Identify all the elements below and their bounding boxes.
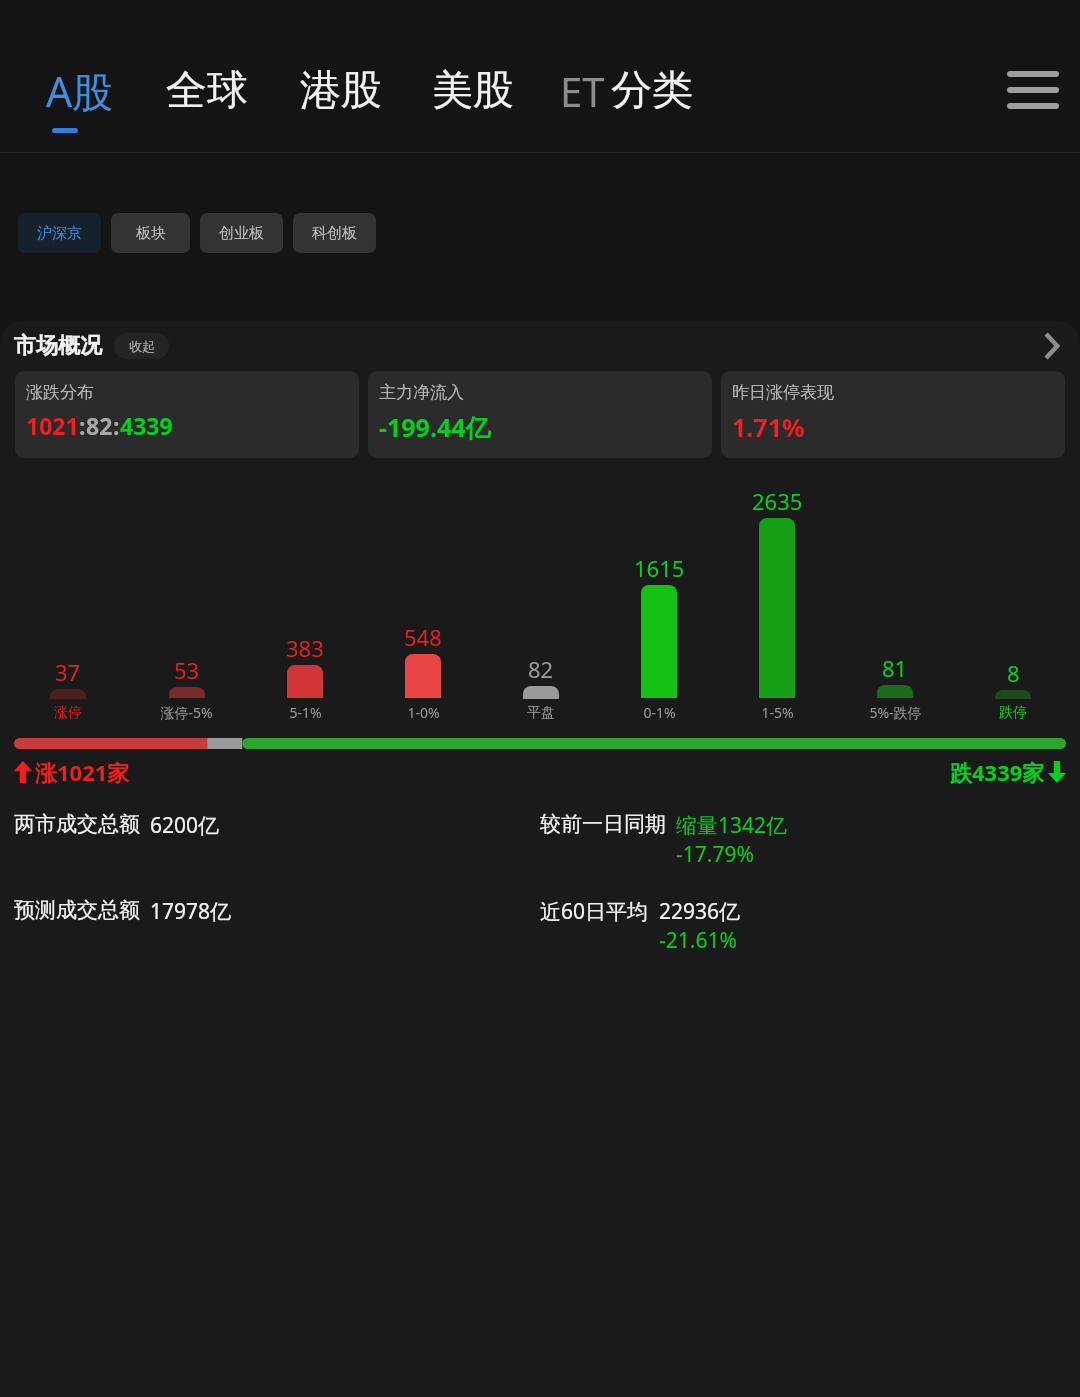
staticText: 跌停	[999, 704, 1027, 722]
staticText: 港股	[300, 65, 382, 117]
staticText: 22936亿	[659, 897, 741, 926]
button[interactable]: A股	[46, 63, 114, 119]
button[interactable]: 分类	[611, 65, 693, 117]
button[interactable]: 昨日涨停表现	[721, 371, 1065, 458]
staticText: 4339	[120, 410, 173, 441]
staticText: 17978亿	[150, 897, 232, 926]
staticText: A股	[46, 63, 114, 119]
button[interactable]: 沪深京	[18, 213, 101, 253]
staticText: -17.79%	[676, 840, 754, 869]
staticText: 全球	[166, 65, 248, 117]
staticText: 昨日涨停表现	[732, 382, 834, 403]
staticText: 主力净流入	[379, 382, 464, 403]
staticText: 5%-跌停	[869, 703, 922, 722]
staticText: 1-0%	[407, 703, 440, 722]
button[interactable]: 板块	[111, 213, 190, 253]
staticText: 6200亿	[150, 811, 220, 840]
staticText: ET	[560, 64, 605, 118]
button[interactable]: 美股	[432, 65, 514, 117]
button[interactable]: 收起	[114, 333, 169, 359]
staticText: 1-5%	[761, 703, 794, 722]
staticText: 548	[404, 622, 442, 652]
button[interactable]: 全球	[166, 65, 248, 117]
staticText: 预测成交总额	[14, 897, 140, 923]
staticText: 美股	[432, 65, 514, 117]
staticText: -21.61%	[659, 926, 737, 955]
staticText: 科创板	[312, 224, 357, 243]
button[interactable]: 主力净流入	[368, 371, 712, 458]
staticText: 8	[1007, 658, 1020, 688]
button[interactable]: 港股	[300, 65, 382, 117]
staticText: 82	[86, 410, 113, 441]
button[interactable]: 菜单	[998, 56, 1068, 126]
staticText: 板块	[136, 224, 166, 243]
staticText: 0-1%	[643, 703, 676, 722]
staticText: :	[113, 410, 120, 441]
staticText: 82	[528, 654, 554, 684]
staticText: 市场概况	[14, 332, 102, 360]
staticText: 分类	[611, 65, 693, 117]
staticText: 平盘	[527, 704, 555, 722]
staticText: -199.44亿	[379, 410, 491, 444]
staticText: 涨跌分布	[26, 382, 94, 403]
staticText: 1.71%	[732, 410, 805, 444]
staticText: 两市成交总额	[14, 811, 140, 837]
staticText: 1615	[634, 553, 685, 583]
button[interactable]: 涨跌分布	[15, 371, 359, 458]
staticText: 5-1%	[289, 703, 322, 722]
staticText: 涨停-5%	[160, 703, 213, 722]
staticText: 收起	[129, 338, 155, 354]
button[interactable]: 创业板	[200, 213, 283, 253]
staticText: 383	[286, 633, 324, 663]
staticText: 跌4339家	[950, 757, 1045, 787]
button[interactable]: 市场概况	[0, 321, 1080, 371]
staticText: 涨1021家	[35, 757, 130, 787]
staticText: 53	[174, 655, 200, 685]
staticText: 近60日平均	[540, 897, 649, 926]
staticText: 沪深京	[37, 224, 82, 243]
button[interactable]: 更多	[1036, 331, 1066, 361]
staticText: 37	[55, 657, 81, 687]
staticText: 较前一日同期	[540, 811, 666, 837]
staticText: :	[79, 410, 86, 441]
button[interactable]: 科创板	[293, 213, 376, 253]
staticText: 1021	[26, 410, 79, 441]
staticText: 涨停	[54, 704, 82, 722]
staticText: 创业板	[219, 224, 264, 243]
staticText: 2635	[752, 486, 803, 516]
staticText: 81	[882, 653, 908, 683]
staticText: 缩量1342亿	[676, 811, 788, 840]
